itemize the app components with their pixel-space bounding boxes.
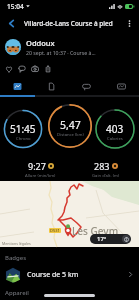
staticText: Chrono [16, 136, 31, 142]
staticText: 5,47 [60, 118, 81, 132]
staticText: Villard-de-Lans Course à pied [24, 19, 120, 28]
staticText: 283 [94, 160, 110, 172]
staticText: 17° [97, 235, 107, 243]
staticText: Distance (km) [57, 132, 84, 138]
staticText: Gain d'alt. (m) [92, 173, 120, 179]
staticText: Course de 5 km [27, 270, 127, 280]
staticText: Calories [107, 136, 123, 142]
button[interactable]: Details [34, 78, 69, 95]
button[interactable]: Photos [104, 78, 139, 95]
button[interactable]: 17° [97, 234, 130, 244]
staticText: 403 [106, 122, 124, 136]
button[interactable]: Back [3, 15, 20, 32]
staticText: Allure (min/km) [25, 173, 56, 179]
staticText: Badges [5, 254, 27, 262]
button[interactable]: Comments [69, 78, 104, 95]
staticText: 20 sept. at 10:37 · Course à… [26, 49, 96, 56]
staticText: Mentions légales [2, 241, 31, 246]
button[interactable]: More options [122, 16, 136, 30]
staticText: Oddoux [26, 38, 55, 48]
staticText: D531 [50, 228, 60, 233]
button[interactable]: Share [41, 62, 54, 75]
staticText: 15:04 [7, 2, 24, 11]
staticText: Appareil [5, 289, 29, 297]
button[interactable]: Activity [0, 78, 34, 95]
button[interactable]: Oddoux [5, 34, 134, 59]
button[interactable]: Course de 5 km [5, 264, 134, 285]
staticText: 9:27 [28, 160, 46, 172]
button[interactable]: Photos [28, 62, 41, 75]
staticText: 51:45 [10, 122, 36, 136]
staticText: Les Geym [72, 224, 119, 238]
button[interactable]: Comment [15, 62, 28, 75]
button[interactable]: Like [2, 62, 15, 75]
